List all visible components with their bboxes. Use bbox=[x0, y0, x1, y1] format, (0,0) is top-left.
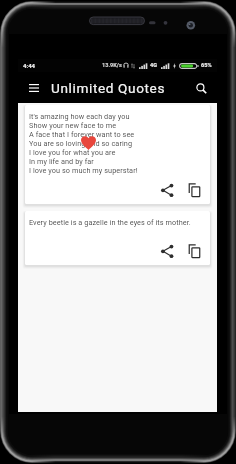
staticText: 65% bbox=[201, 62, 212, 69]
button[interactable]: Share bbox=[160, 244, 174, 258]
staticText: Every beetle is a gazelle in the eyes of… bbox=[29, 218, 191, 227]
button[interactable]: Copy bbox=[187, 244, 201, 258]
staticText: 4:44 bbox=[23, 62, 36, 69]
staticText: 13.9K/s bbox=[102, 62, 122, 69]
button[interactable]: Open navigation menu bbox=[23, 77, 45, 99]
staticText: It's amazing how each day you Show your … bbox=[29, 112, 138, 175]
staticText: Unlimited Quotes bbox=[51, 80, 166, 96]
button[interactable]: Search bbox=[190, 77, 212, 99]
button[interactable]: Copy bbox=[187, 183, 201, 197]
button[interactable]: Share bbox=[160, 183, 174, 197]
button[interactable]: It's amazing how each day you Show your … bbox=[25, 105, 210, 204]
staticText: 4G bbox=[150, 62, 158, 69]
button[interactable]: Every beetle is a gazelle in the eyes of… bbox=[25, 211, 210, 265]
